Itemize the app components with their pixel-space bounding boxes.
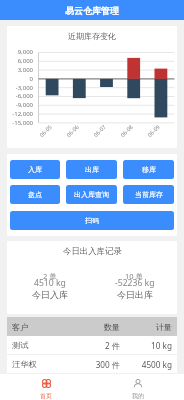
staticText: 2 单 bbox=[43, 271, 57, 281]
staticText: -52236 kg bbox=[115, 277, 155, 289]
staticText: 扫码 bbox=[85, 216, 99, 225]
staticText: -9,000 bbox=[15, 101, 33, 109]
staticText: 9,000 bbox=[17, 48, 33, 56]
button[interactable]: 盘点 bbox=[10, 185, 60, 204]
staticText: 6,000 bbox=[17, 57, 33, 65]
button[interactable]: 首页 bbox=[0, 374, 92, 400]
staticText: 入库 bbox=[28, 165, 42, 174]
staticText: 易云仓库管理 bbox=[65, 5, 119, 16]
staticText: -12,000 bbox=[12, 110, 33, 118]
staticText: 计量 bbox=[120, 322, 172, 332]
button[interactable]: 扫码 bbox=[10, 211, 174, 230]
button[interactable]: 入库 bbox=[10, 160, 60, 179]
staticText: 06-09 bbox=[146, 123, 161, 138]
button[interactable]: 出入库查询 bbox=[66, 185, 117, 204]
staticText: 06-05 bbox=[38, 123, 53, 138]
staticText: 出入库查询 bbox=[74, 190, 109, 199]
staticText: 06-06 bbox=[65, 123, 80, 138]
staticText: 今日出库 bbox=[117, 289, 153, 300]
staticText: -3,000 bbox=[15, 84, 33, 92]
button[interactable]: 测试 bbox=[7, 336, 177, 354]
staticText: -15,000 bbox=[12, 119, 33, 127]
staticText: 10 单 bbox=[125, 271, 144, 281]
staticText: 06-08 bbox=[119, 123, 134, 138]
staticText: 汪华权 bbox=[12, 359, 64, 369]
button[interactable]: 移库 bbox=[123, 160, 174, 179]
staticText: 出库 bbox=[85, 165, 99, 174]
staticText: 0 bbox=[29, 75, 33, 83]
staticText: 我的 bbox=[132, 392, 144, 400]
staticText: 数量 bbox=[64, 322, 120, 332]
staticText: 移库 bbox=[142, 165, 156, 174]
staticText: 当前库存 bbox=[135, 190, 163, 199]
staticText: 今日出入库记录 bbox=[63, 246, 122, 257]
button[interactable]: 出库 bbox=[66, 160, 117, 179]
staticText: 2 件 bbox=[64, 340, 120, 351]
staticText: -6,000 bbox=[15, 92, 33, 100]
staticText: 4510 kg bbox=[34, 277, 66, 289]
staticText: 首页 bbox=[40, 392, 52, 400]
button[interactable]: 汪华权 bbox=[7, 355, 177, 373]
button[interactable]: 我的 bbox=[92, 374, 184, 400]
staticText: 300 件 bbox=[64, 359, 120, 370]
staticText: 06-07 bbox=[92, 123, 107, 138]
staticText: 4500 kg bbox=[120, 359, 172, 370]
staticText: 10 kg bbox=[120, 340, 172, 351]
staticText: 盘点 bbox=[28, 190, 42, 199]
staticText: 测试 bbox=[12, 340, 64, 350]
staticText: 3,000 bbox=[17, 66, 33, 74]
staticText: 客户 bbox=[12, 322, 64, 332]
button[interactable]: 当前库存 bbox=[123, 185, 174, 204]
staticText: 今日入库 bbox=[32, 289, 68, 300]
staticText: 近期库存变化 bbox=[68, 31, 116, 41]
